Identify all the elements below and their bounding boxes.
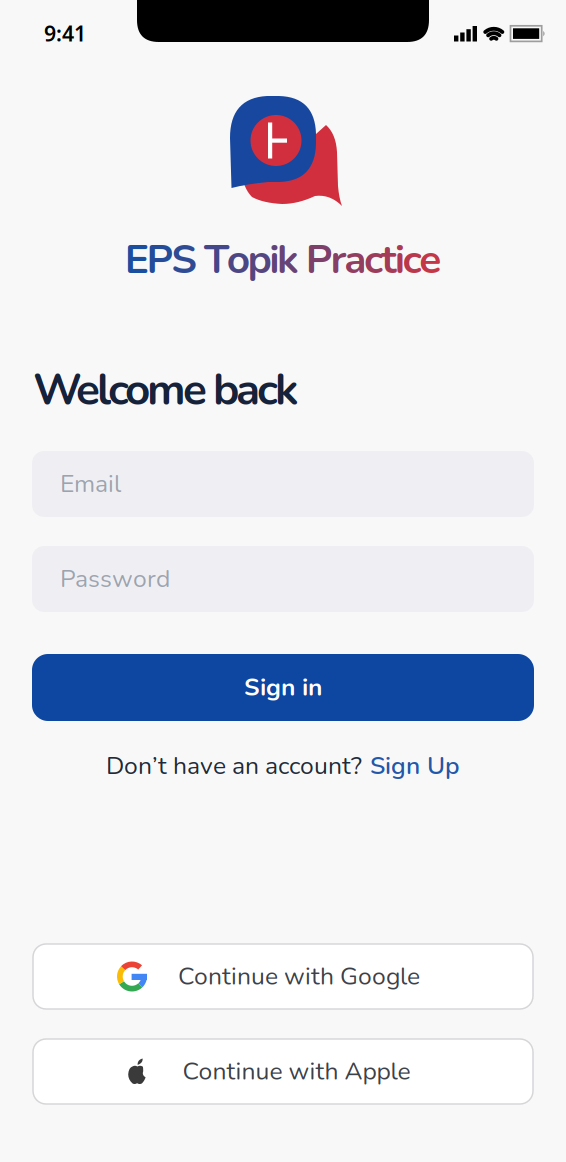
staticText: Password [60,562,170,596]
staticText: S [171,232,197,287]
staticText: c [364,232,383,287]
staticText [297,232,308,287]
staticText: E [125,232,149,287]
button[interactable]: Email [32,451,534,517]
staticText: Don’t have an account? [106,749,362,783]
staticText: k [277,232,299,287]
button[interactable]: Sign Up [370,749,460,783]
staticText: Continue with Google [178,960,420,993]
staticText: Email [60,467,121,501]
staticText: p [247,232,271,287]
staticText: P [146,232,173,287]
staticText: r [330,232,346,287]
staticText: i [395,232,405,287]
staticText: t [381,232,397,287]
button[interactable]: Password [32,546,534,612]
staticText: Sign in [244,671,322,704]
staticText [195,232,206,287]
button[interactable]: Sign in [32,654,534,721]
staticText: e [419,232,441,287]
staticText: o [227,232,250,287]
button[interactable]: Continue with Apple [33,1039,533,1104]
staticText: a [344,232,366,287]
staticText: c [402,232,421,287]
staticText: i [269,232,279,287]
staticText: Sign Up [370,749,460,783]
staticText: 9:41 [44,19,86,47]
staticText: Continue with Apple [182,1055,410,1088]
staticText: P [306,232,333,287]
staticText: T [204,232,229,287]
button[interactable]: Continue with Google [33,944,533,1009]
staticText: Welcome back [33,360,299,420]
